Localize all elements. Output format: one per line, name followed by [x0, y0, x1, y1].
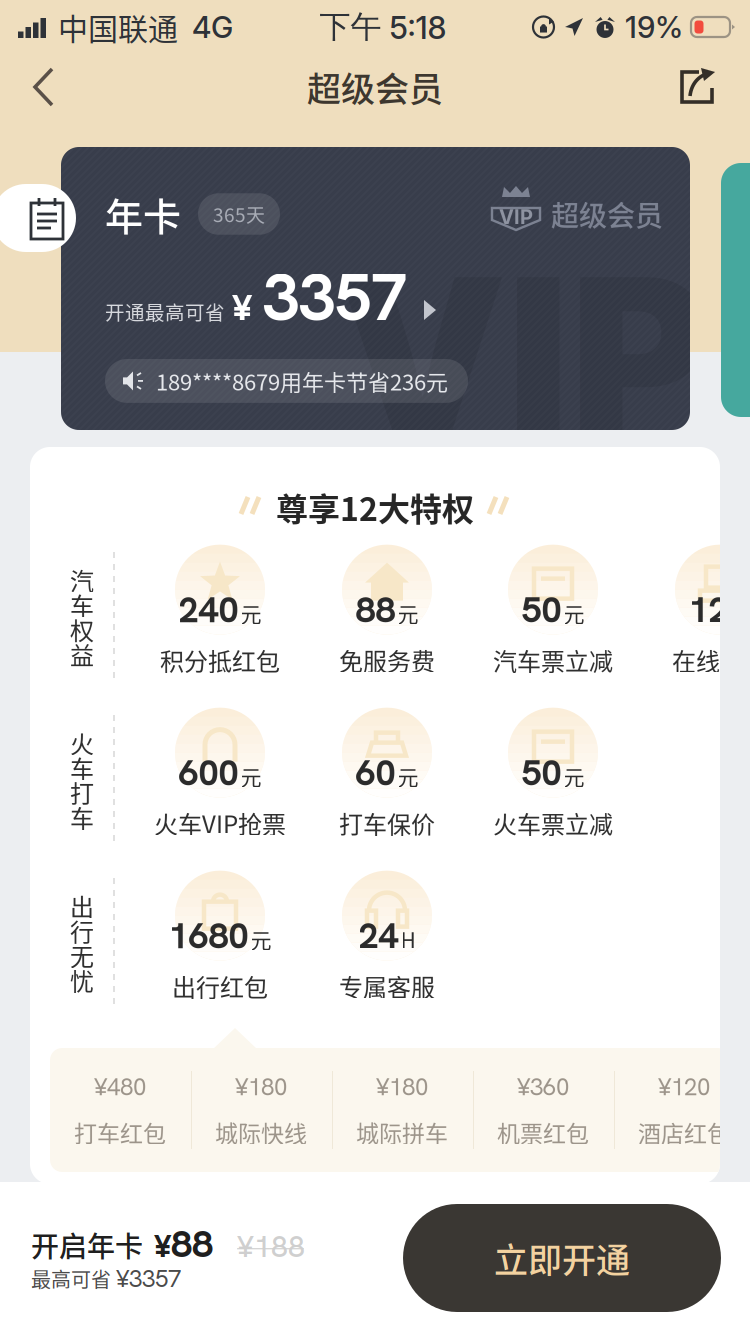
staticText: 免服务费: [339, 643, 435, 677]
button[interactable]: My orders: [0, 184, 76, 252]
staticText: 12: [688, 586, 728, 633]
staticText: 3357: [263, 255, 407, 340]
staticText: 打车红包: [74, 1115, 166, 1149]
staticText: 酒店红包: [638, 1115, 730, 1149]
staticText: 365天: [213, 200, 265, 228]
staticText: 在线选座: [672, 643, 750, 677]
staticText: 火车票立减: [493, 806, 613, 840]
staticText: 开通最高可省: [105, 297, 225, 326]
staticText: ¥480: [94, 1071, 146, 1102]
staticText: ¥180: [235, 1071, 287, 1102]
staticText: 尊享12大特权: [276, 484, 474, 530]
staticText: 88: [171, 1219, 213, 1268]
staticText: ¥188: [237, 1227, 305, 1266]
staticText: 60: [355, 749, 395, 796]
staticText: 88: [355, 586, 395, 633]
staticText: 出 行 无 忧: [70, 888, 94, 997]
staticText: 元: [397, 761, 418, 791]
staticText: 50: [521, 749, 561, 796]
staticText: ¥: [154, 1226, 171, 1266]
staticText: 中国联通: [58, 5, 178, 49]
button[interactable]: 立即开通: [403, 1204, 721, 1312]
staticText: 元: [563, 598, 584, 628]
staticText: 超级会员: [307, 62, 443, 112]
button[interactable]: Share: [658, 54, 750, 120]
staticText: 火 车 打 车: [70, 725, 94, 834]
staticText: VIP: [336, 225, 711, 485]
staticText: 立即开通: [494, 1233, 630, 1283]
staticText: H: [400, 924, 415, 954]
staticText: 最高可省: [31, 1264, 111, 1293]
staticText: 240: [178, 586, 238, 633]
staticText: 元: [250, 924, 271, 954]
staticText: 火车VIP抢票: [154, 806, 286, 840]
staticText: 下午 5:18: [319, 7, 446, 47]
staticText: 出行红包: [172, 969, 268, 1003]
staticText: 元: [240, 761, 261, 791]
staticText: 年卡: [105, 186, 181, 241]
staticText: 元: [240, 598, 261, 628]
staticText: ¥: [232, 284, 252, 331]
staticText: 1680: [168, 912, 248, 959]
staticText: VIP: [499, 205, 533, 229]
staticText: 机票红包: [497, 1115, 589, 1149]
staticText: 24: [358, 912, 398, 959]
staticText: 19%: [625, 9, 683, 45]
staticText: 城际快线: [215, 1115, 307, 1149]
staticText: ¥120: [658, 1071, 710, 1102]
staticText: 189****8679用年卡节省236元: [156, 365, 448, 397]
button[interactable]: Back: [0, 54, 76, 120]
staticText: ¥3357: [116, 1263, 181, 1294]
staticText: 元: [397, 598, 418, 628]
staticText: ¥360: [517, 1071, 569, 1102]
staticText: 元: [563, 761, 584, 791]
staticText: 汽 车 权 益: [70, 562, 94, 671]
staticText: 汽车票立减: [493, 643, 613, 677]
staticText: 专属客服: [339, 969, 435, 1003]
staticText: 600: [178, 749, 238, 796]
staticText: 50: [521, 586, 561, 633]
staticText: 4G: [192, 9, 233, 45]
staticText: 积分抵红包: [160, 643, 280, 677]
staticText: 打车保价: [339, 806, 435, 840]
staticText: ¥180: [376, 1071, 428, 1102]
staticText: 开启年卡: [31, 1224, 143, 1265]
staticText: 超级会员: [551, 194, 663, 234]
staticText: 城际拼车: [356, 1115, 448, 1149]
